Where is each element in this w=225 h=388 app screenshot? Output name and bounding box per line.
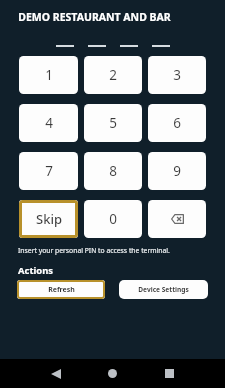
button[interactable]: 1	[19, 56, 78, 94]
button[interactable]: 2	[84, 56, 142, 94]
staticText: DEMO RESTAURANT AND BAR	[18, 10, 171, 24]
staticText: 4	[45, 114, 53, 132]
button[interactable]: 4	[19, 104, 78, 142]
staticText: 8	[109, 162, 117, 180]
staticText: Skip	[36, 210, 62, 228]
staticText: 0	[109, 210, 117, 228]
button[interactable]: 6	[148, 104, 206, 142]
staticText: 2	[109, 66, 117, 84]
button[interactable]: Skip	[19, 200, 78, 238]
staticText: Insert your personal PIN to access the t…	[18, 246, 170, 255]
button[interactable]: 7	[19, 152, 78, 190]
button[interactable]: 3	[148, 56, 206, 94]
staticText: 9	[173, 162, 181, 180]
button[interactable]: Device Settings	[119, 280, 208, 299]
staticText: 3	[173, 66, 181, 84]
staticText: Device Settings	[138, 285, 189, 294]
button[interactable]: Backspace	[148, 200, 206, 238]
button[interactable]: 5	[84, 104, 142, 142]
button[interactable]: 9	[148, 152, 206, 190]
staticText: Refresh	[48, 285, 75, 295]
button[interactable]: Back	[27, 359, 84, 388]
button[interactable]: 8	[84, 152, 142, 190]
button[interactable]: Refresh	[17, 280, 105, 299]
staticText: Actions	[18, 264, 53, 277]
button[interactable]: 0	[84, 200, 142, 238]
button[interactable]: Recents	[141, 359, 198, 388]
button[interactable]: Home	[84, 359, 141, 388]
staticText: 6	[173, 114, 181, 132]
staticText: 7	[45, 162, 53, 180]
staticText: 5	[109, 114, 117, 132]
staticText: 1	[45, 66, 53, 84]
